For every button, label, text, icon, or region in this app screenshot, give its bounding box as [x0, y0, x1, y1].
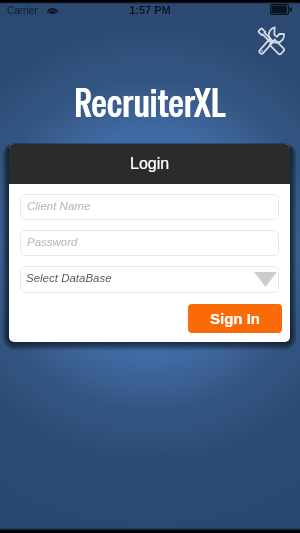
staticText: Carrier: [7, 5, 38, 16]
staticText: Login: [130, 155, 170, 173]
staticText: Client Name: [27, 200, 91, 213]
staticText: RecruiterXL: [0, 77, 300, 128]
button[interactable]: Settings: [253, 23, 289, 59]
button[interactable]: Select DataBase: [20, 266, 279, 293]
button[interactable]: Password: [20, 230, 279, 256]
button[interactable]: Sign In: [188, 304, 282, 333]
staticText: Sign In: [210, 310, 260, 327]
button[interactable]: Client Name: [20, 194, 279, 220]
staticText: Select DataBase: [26, 272, 112, 285]
staticText: 1:57 PM: [0, 4, 300, 16]
staticText: Password: [27, 236, 78, 249]
